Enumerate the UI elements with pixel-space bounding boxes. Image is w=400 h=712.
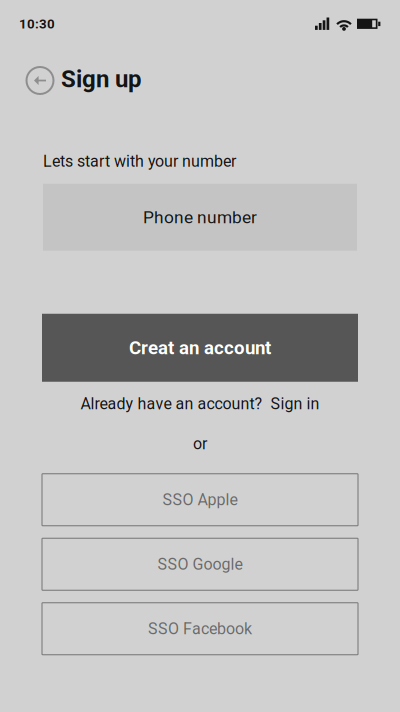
button[interactable]: SSO Apple <box>42 474 358 526</box>
button[interactable]: SSO Facebook <box>42 603 358 655</box>
staticText: Sign up <box>61 65 142 93</box>
button[interactable]: Creat an account <box>42 314 358 382</box>
staticText: SSO Google <box>157 555 242 574</box>
staticText: Phone number <box>143 207 257 227</box>
staticText: Already have an account? Sign in <box>80 394 319 413</box>
staticText: 10:30 <box>19 16 55 32</box>
staticText: SSO Apple <box>162 490 237 509</box>
staticText: Creat an account <box>129 337 271 359</box>
staticText: or <box>193 434 207 453</box>
button[interactable]: Already have an account? Sign in <box>0 392 400 416</box>
button[interactable]: Back <box>24 62 55 95</box>
button[interactable]: SSO Google <box>42 538 358 590</box>
staticText: Lets start with your number <box>43 152 236 171</box>
staticText: SSO Facebook <box>148 619 252 638</box>
